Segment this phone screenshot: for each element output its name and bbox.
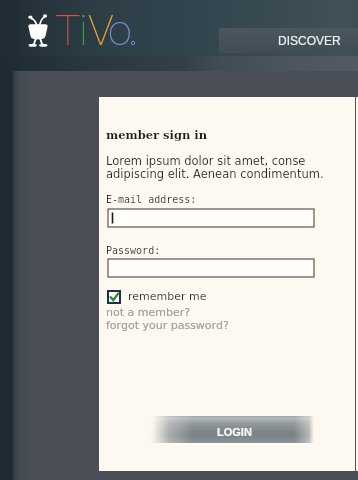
button[interactable] <box>108 209 314 227</box>
staticText: V <box>88 5 114 55</box>
other: TiVo <box>26 12 52 62</box>
staticText: member sign in <box>106 128 208 142</box>
button[interactable]: LOGIN <box>150 416 314 447</box>
staticText: Password: <box>106 245 161 257</box>
button[interactable]: forgot your password? <box>106 319 229 332</box>
staticText: i <box>79 5 88 55</box>
staticText: o <box>108 5 132 55</box>
button[interactable]: not a member? <box>106 306 191 319</box>
button[interactable] <box>108 259 314 277</box>
button[interactable]: remember me <box>108 290 207 303</box>
staticText: T <box>55 5 81 55</box>
button[interactable]: DISCOVER <box>219 28 358 53</box>
staticText: LOGIN <box>217 426 252 438</box>
staticText: E-mail address: <box>106 194 197 206</box>
staticText: Lorem ipsum dolor sit amet, conse <box>106 154 306 167</box>
staticText: remember me <box>128 290 207 303</box>
staticText: adipiscing elit. Aenean condimentum. <box>106 167 324 180</box>
staticText: DISCOVER <box>278 34 341 47</box>
